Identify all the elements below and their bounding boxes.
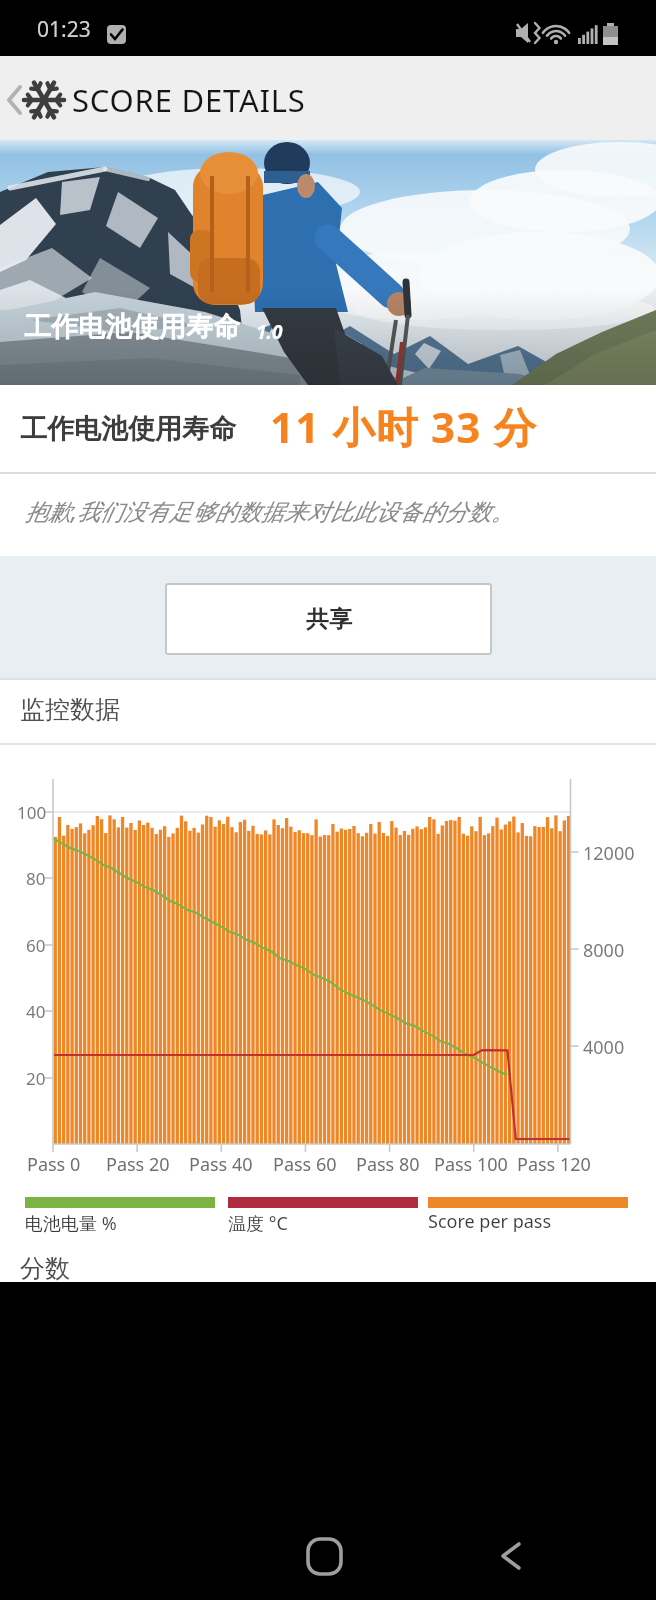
staticText: 分数 — [20, 1253, 70, 1284]
staticText: 8000 — [583, 938, 625, 963]
staticText: Pass 0 — [27, 1152, 81, 1177]
staticText: 监控数据 — [20, 694, 120, 725]
staticText: 12000 — [583, 841, 635, 866]
staticText: 抱歉,我们没有足够的数据来对比此设备的分数。 — [25, 495, 514, 526]
staticText: Score per pass — [428, 1209, 552, 1234]
staticText: 共享 — [306, 605, 352, 634]
staticText: 4000 — [583, 1035, 625, 1060]
staticText: 电池电量 % — [25, 1211, 117, 1236]
staticText: 工作电池使用寿命 — [24, 310, 240, 344]
button[interactable] — [0, 56, 70, 140]
staticText: 40 — [26, 1000, 46, 1023]
staticText: 100 — [17, 801, 47, 824]
staticText: Pass 40 — [189, 1152, 253, 1177]
staticText: 1.0 — [256, 319, 283, 345]
staticText: Pass 100 — [434, 1152, 508, 1177]
staticText: Pass 60 — [273, 1152, 337, 1177]
staticText: SCORE DETAILS — [72, 79, 306, 121]
staticText: 80 — [26, 867, 46, 890]
staticText: 01:23 — [37, 15, 91, 44]
staticText: 工作电池使用寿命 — [20, 412, 236, 446]
staticText: 60 — [26, 934, 46, 957]
staticText: 11 小时 33 分 — [270, 398, 537, 455]
staticText: Pass 80 — [356, 1152, 420, 1177]
staticText: 温度 °C — [228, 1211, 288, 1236]
staticText: Pass 120 — [517, 1152, 591, 1177]
button[interactable]: 共享 — [165, 583, 492, 655]
staticText: 20 — [26, 1067, 46, 1090]
staticText: Pass 20 — [106, 1152, 170, 1177]
